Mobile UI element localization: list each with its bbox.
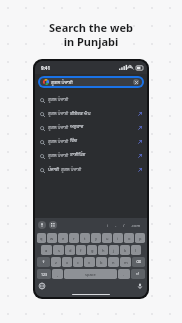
staticText: j (113, 248, 115, 253)
staticText: o (128, 236, 131, 241)
button[interactable]: t (80, 233, 90, 243)
staticText: Search the web in Punjabi (49, 20, 133, 49)
button[interactable]: ਗੂਗਲ ਪੰਜਾਬੀ (35, 93, 147, 107)
staticText: ਗੂਗਲ ਪੰਜਾਬੀ (51, 79, 73, 85)
button[interactable]: . (118, 269, 130, 279)
button[interactable]: Voice input (38, 221, 46, 229)
staticText: n (112, 260, 115, 265)
staticText: ਗੂਗਲ ਪੰਜਾਬੀ (61, 167, 82, 173)
staticText: ⌫ (136, 260, 142, 264)
button[interactable]: e (58, 233, 68, 243)
staticText: ⏎ (136, 272, 140, 276)
button[interactable]: d (65, 245, 75, 255)
button[interactable]: l (131, 245, 141, 255)
button[interactable]: y (91, 233, 101, 243)
button[interactable]: Voice typing (137, 283, 143, 289)
button[interactable]: ਪੰਜਾਬੀ (35, 163, 147, 177)
other: Insert suggestion (138, 154, 142, 158)
button[interactable]: n (108, 257, 119, 267)
button[interactable]: j (109, 245, 119, 255)
button[interactable]: x (62, 257, 72, 267)
staticText: x (66, 260, 69, 265)
staticText: ਅਨੁਵਾਦ (70, 125, 84, 129)
button[interactable]: 123 (37, 269, 51, 279)
button[interactable]: v (84, 257, 95, 267)
staticText: y (95, 236, 98, 241)
button[interactable]: k (120, 245, 130, 255)
button[interactable]: b (96, 257, 107, 267)
button[interactable]: ⇧ (37, 257, 50, 267)
button[interactable]: f (76, 245, 86, 255)
button[interactable]: space (64, 269, 117, 279)
staticText: r (73, 236, 75, 241)
button[interactable]: - (112, 223, 120, 228)
button[interactable]: i (113, 233, 123, 243)
button[interactable]: q (37, 233, 46, 243)
staticText: ਵਿੱਚ (70, 139, 78, 143)
other: Insert suggestion (138, 168, 142, 172)
button[interactable]: .com (128, 223, 144, 228)
button[interactable]: g (87, 245, 97, 255)
staticText: ⇧ (42, 260, 46, 264)
staticText: t (84, 236, 86, 241)
staticText: q (40, 236, 43, 241)
button[interactable]: Clear (133, 79, 139, 85)
button[interactable]: Change language (39, 283, 45, 289)
button[interactable]: ⏎ (131, 269, 145, 279)
button[interactable]: a (41, 245, 52, 255)
staticText: z (55, 260, 57, 265)
staticText: v (88, 260, 91, 265)
staticText: m (124, 260, 128, 265)
staticText: u (106, 236, 109, 241)
staticText: ਗੂਗਲ ਪੰਜਾਬੀ (48, 97, 69, 103)
staticText: 123 (41, 272, 48, 277)
staticText: a (45, 248, 48, 253)
button[interactable]: Sticker and emoji (49, 221, 57, 229)
staticText: k (124, 248, 127, 253)
staticText: space (85, 272, 96, 277)
button[interactable]: ਗੂਗਲ ਪੰਜਾਬੀ (35, 149, 147, 163)
staticText: e (62, 236, 65, 241)
staticText: ਗੂਗਲ ਪੰਜਾਬੀ (48, 139, 70, 145)
staticText: f (80, 248, 82, 253)
other: Insert suggestion (138, 140, 142, 144)
button[interactable]: c (73, 257, 83, 267)
staticText: g (91, 248, 94, 253)
other: Insert suggestion (138, 126, 142, 130)
button[interactable]: u (102, 233, 112, 243)
button[interactable]: / (120, 223, 128, 228)
button[interactable]: ਗੂਗਲ ਪੰਜਾਬੀ (35, 121, 147, 135)
staticText: i (117, 236, 119, 241)
staticText: ਪੰਜਾਬੀ (48, 167, 61, 173)
staticText: b (100, 260, 103, 265)
button[interactable]: p (135, 233, 145, 243)
staticText: s (58, 248, 60, 253)
button[interactable]: s (53, 245, 64, 255)
staticText: ਗੂਗਲ ਪੰਜਾਬੀ (48, 111, 70, 117)
button[interactable]: w (47, 233, 57, 243)
staticText: ਕੀਬੋਰਡ ਐਪ (70, 111, 91, 117)
button[interactable]: , (52, 269, 63, 279)
staticText: . (123, 272, 125, 277)
button[interactable]: z (51, 257, 61, 267)
other: Insert suggestion (138, 112, 142, 116)
staticText: l (135, 248, 137, 253)
button[interactable]: । (104, 223, 112, 228)
staticText: 9:41 (41, 65, 50, 71)
staticText: w (50, 236, 54, 241)
staticText: , (57, 272, 59, 277)
button[interactable]: ਗੂਗਲ ਪੰਜਾਬੀ (40, 78, 142, 86)
button[interactable]: o (124, 233, 134, 243)
button[interactable]: m (120, 257, 131, 267)
button[interactable]: r (69, 233, 79, 243)
button[interactable]: ਗੂਗਲ ਪੰਜਾਬੀ (35, 107, 147, 121)
staticText: h (102, 248, 105, 253)
staticText: ਗੂਗਲ ਪੰਜਾਬੀ (48, 125, 70, 131)
staticText: d (69, 248, 72, 253)
button[interactable]: h (98, 245, 108, 255)
staticText: c (77, 260, 79, 265)
button[interactable]: ਗੂਗਲ ਪੰਜਾਬੀ (35, 135, 147, 149)
button[interactable]: ⌫ (132, 257, 145, 267)
staticText: ਗੂਗਲ ਪੰਜਾਬੀ (48, 153, 70, 159)
staticText: p (139, 236, 142, 241)
